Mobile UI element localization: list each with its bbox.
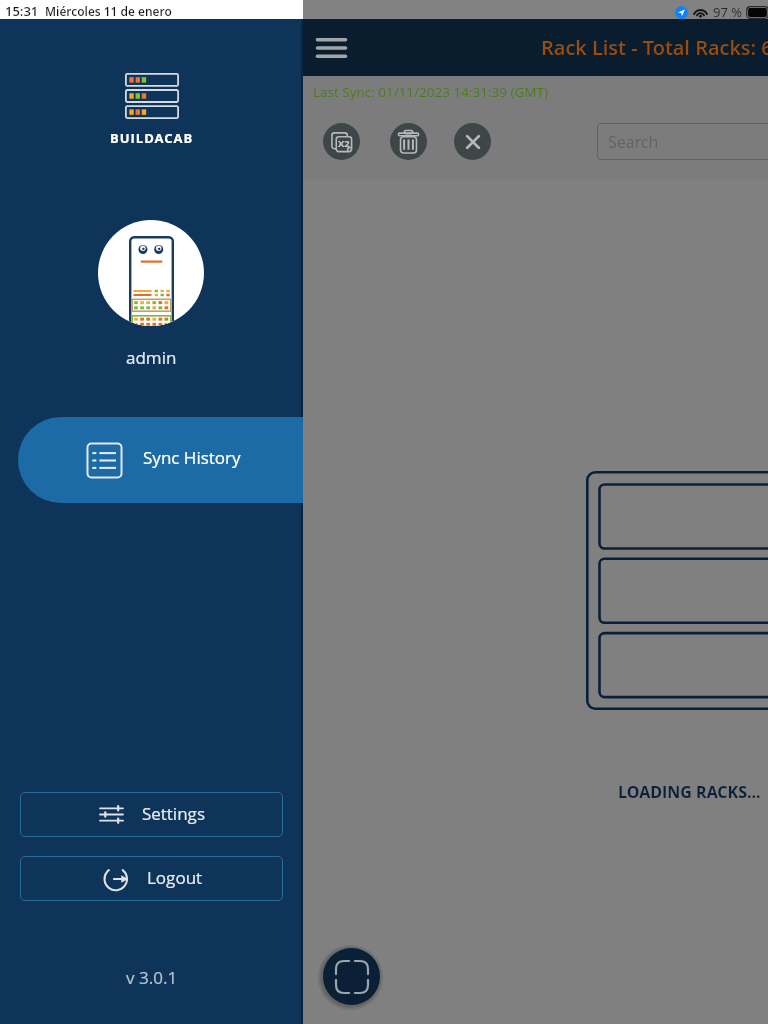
button[interactable]: Settings xyxy=(20,792,283,837)
staticText: 15:31 xyxy=(5,2,39,20)
button[interactable]: Delete rack xyxy=(390,123,427,160)
staticText: admin xyxy=(126,346,177,369)
button[interactable]: Scan barcode xyxy=(323,948,380,1005)
button[interactable]: Sync History xyxy=(18,417,303,503)
button[interactable]: Open navigation menu xyxy=(308,24,355,71)
button[interactable]: Cancel selection xyxy=(454,123,491,160)
staticText: LOADING RACKS... xyxy=(618,781,761,803)
staticText: v 3.0.1 xyxy=(126,966,178,989)
staticText: 97 % xyxy=(713,3,742,21)
button[interactable]: Search xyxy=(597,123,768,160)
staticText: BUILDACAB xyxy=(110,129,194,147)
button[interactable]: Logout xyxy=(20,856,283,901)
staticText: Logout xyxy=(147,866,203,889)
staticText: Rack List - Total Racks: 6 xyxy=(541,34,768,61)
staticText: Sync History xyxy=(143,446,241,469)
staticText: X2 xyxy=(338,137,350,150)
staticText: Search xyxy=(608,131,659,153)
staticText: Settings xyxy=(142,802,206,825)
button[interactable]: Duplicate rack xyxy=(323,123,360,160)
staticText: Last Sync: 01/11/2023 14:31:39 (GMT) xyxy=(313,83,548,101)
staticText: Miércoles 11 de enero xyxy=(45,3,172,19)
button[interactable]: User avatar xyxy=(98,220,204,326)
